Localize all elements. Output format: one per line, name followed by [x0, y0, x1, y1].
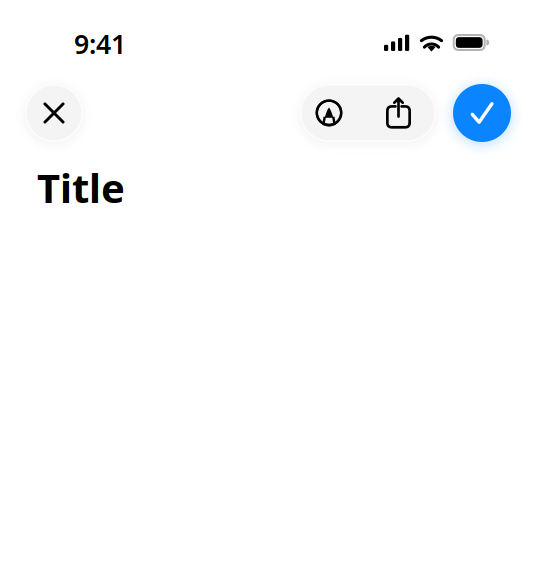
button[interactable]: Share: [368, 84, 436, 142]
button[interactable]: Markup: [300, 84, 368, 142]
button[interactable]: Done: [453, 84, 511, 142]
staticText: Title: [37, 161, 125, 214]
button[interactable]: Close: [25, 84, 83, 142]
staticText: 9:41: [74, 26, 126, 61]
